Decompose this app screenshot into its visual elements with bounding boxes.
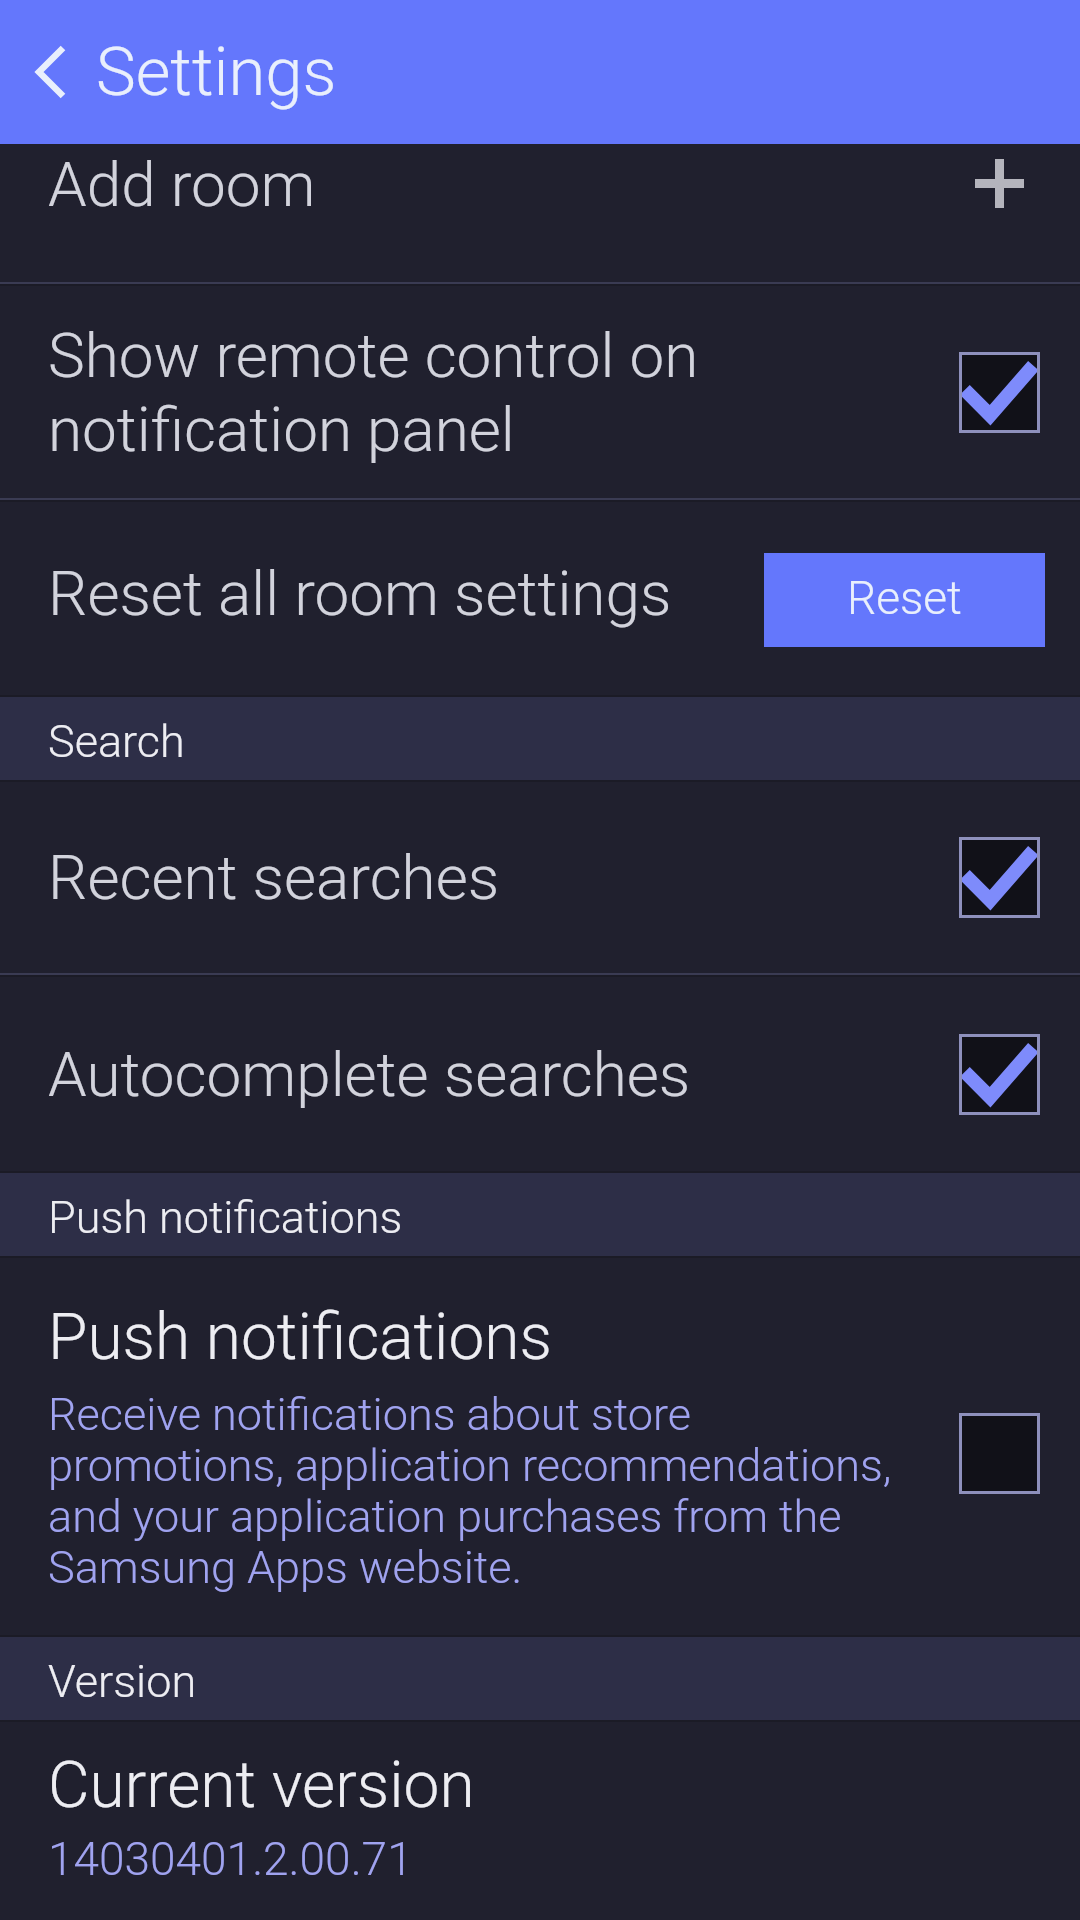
staticText: Push notifications — [48, 1191, 403, 1244]
button[interactable]: Add room — [975, 159, 1024, 208]
staticText: Settings — [96, 33, 337, 112]
staticText: Receive notifications about store promot… — [48, 1390, 892, 1594]
staticText: Reset all room settings — [48, 557, 764, 630]
staticText: Version — [48, 1655, 197, 1708]
staticText: Push notifications — [48, 1300, 552, 1375]
staticText: Add room — [48, 148, 975, 221]
staticText: Recent searches — [48, 841, 959, 914]
button[interactable]: Autocomplete searches — [0, 977, 1080, 1171]
staticText: Autocomplete searches — [48, 1038, 959, 1111]
button[interactable]: Push notifications — [959, 1413, 1040, 1494]
staticText: Reset — [847, 571, 962, 625]
staticText: Search — [48, 715, 185, 768]
button[interactable]: Add room — [0, 144, 1080, 282]
button[interactable]: Show remote control on notification pane… — [959, 352, 1040, 433]
button[interactable]: Recent searches — [959, 837, 1040, 918]
staticText: Current version — [48, 1748, 475, 1823]
button[interactable]: Current version — [0, 1722, 1080, 1920]
staticText: 14030401.2.00.71 — [48, 1832, 413, 1886]
button[interactable]: Show remote control on notification pane… — [0, 286, 1080, 498]
staticText: Show remote control on notification pane… — [48, 318, 959, 466]
button[interactable]: Recent searches — [0, 782, 1080, 973]
button[interactable]: Autocomplete searches — [959, 1034, 1040, 1115]
button[interactable]: Push notifications — [0, 1258, 1080, 1635]
button[interactable]: Reset — [764, 553, 1045, 647]
button[interactable]: Back — [0, 0, 100, 144]
